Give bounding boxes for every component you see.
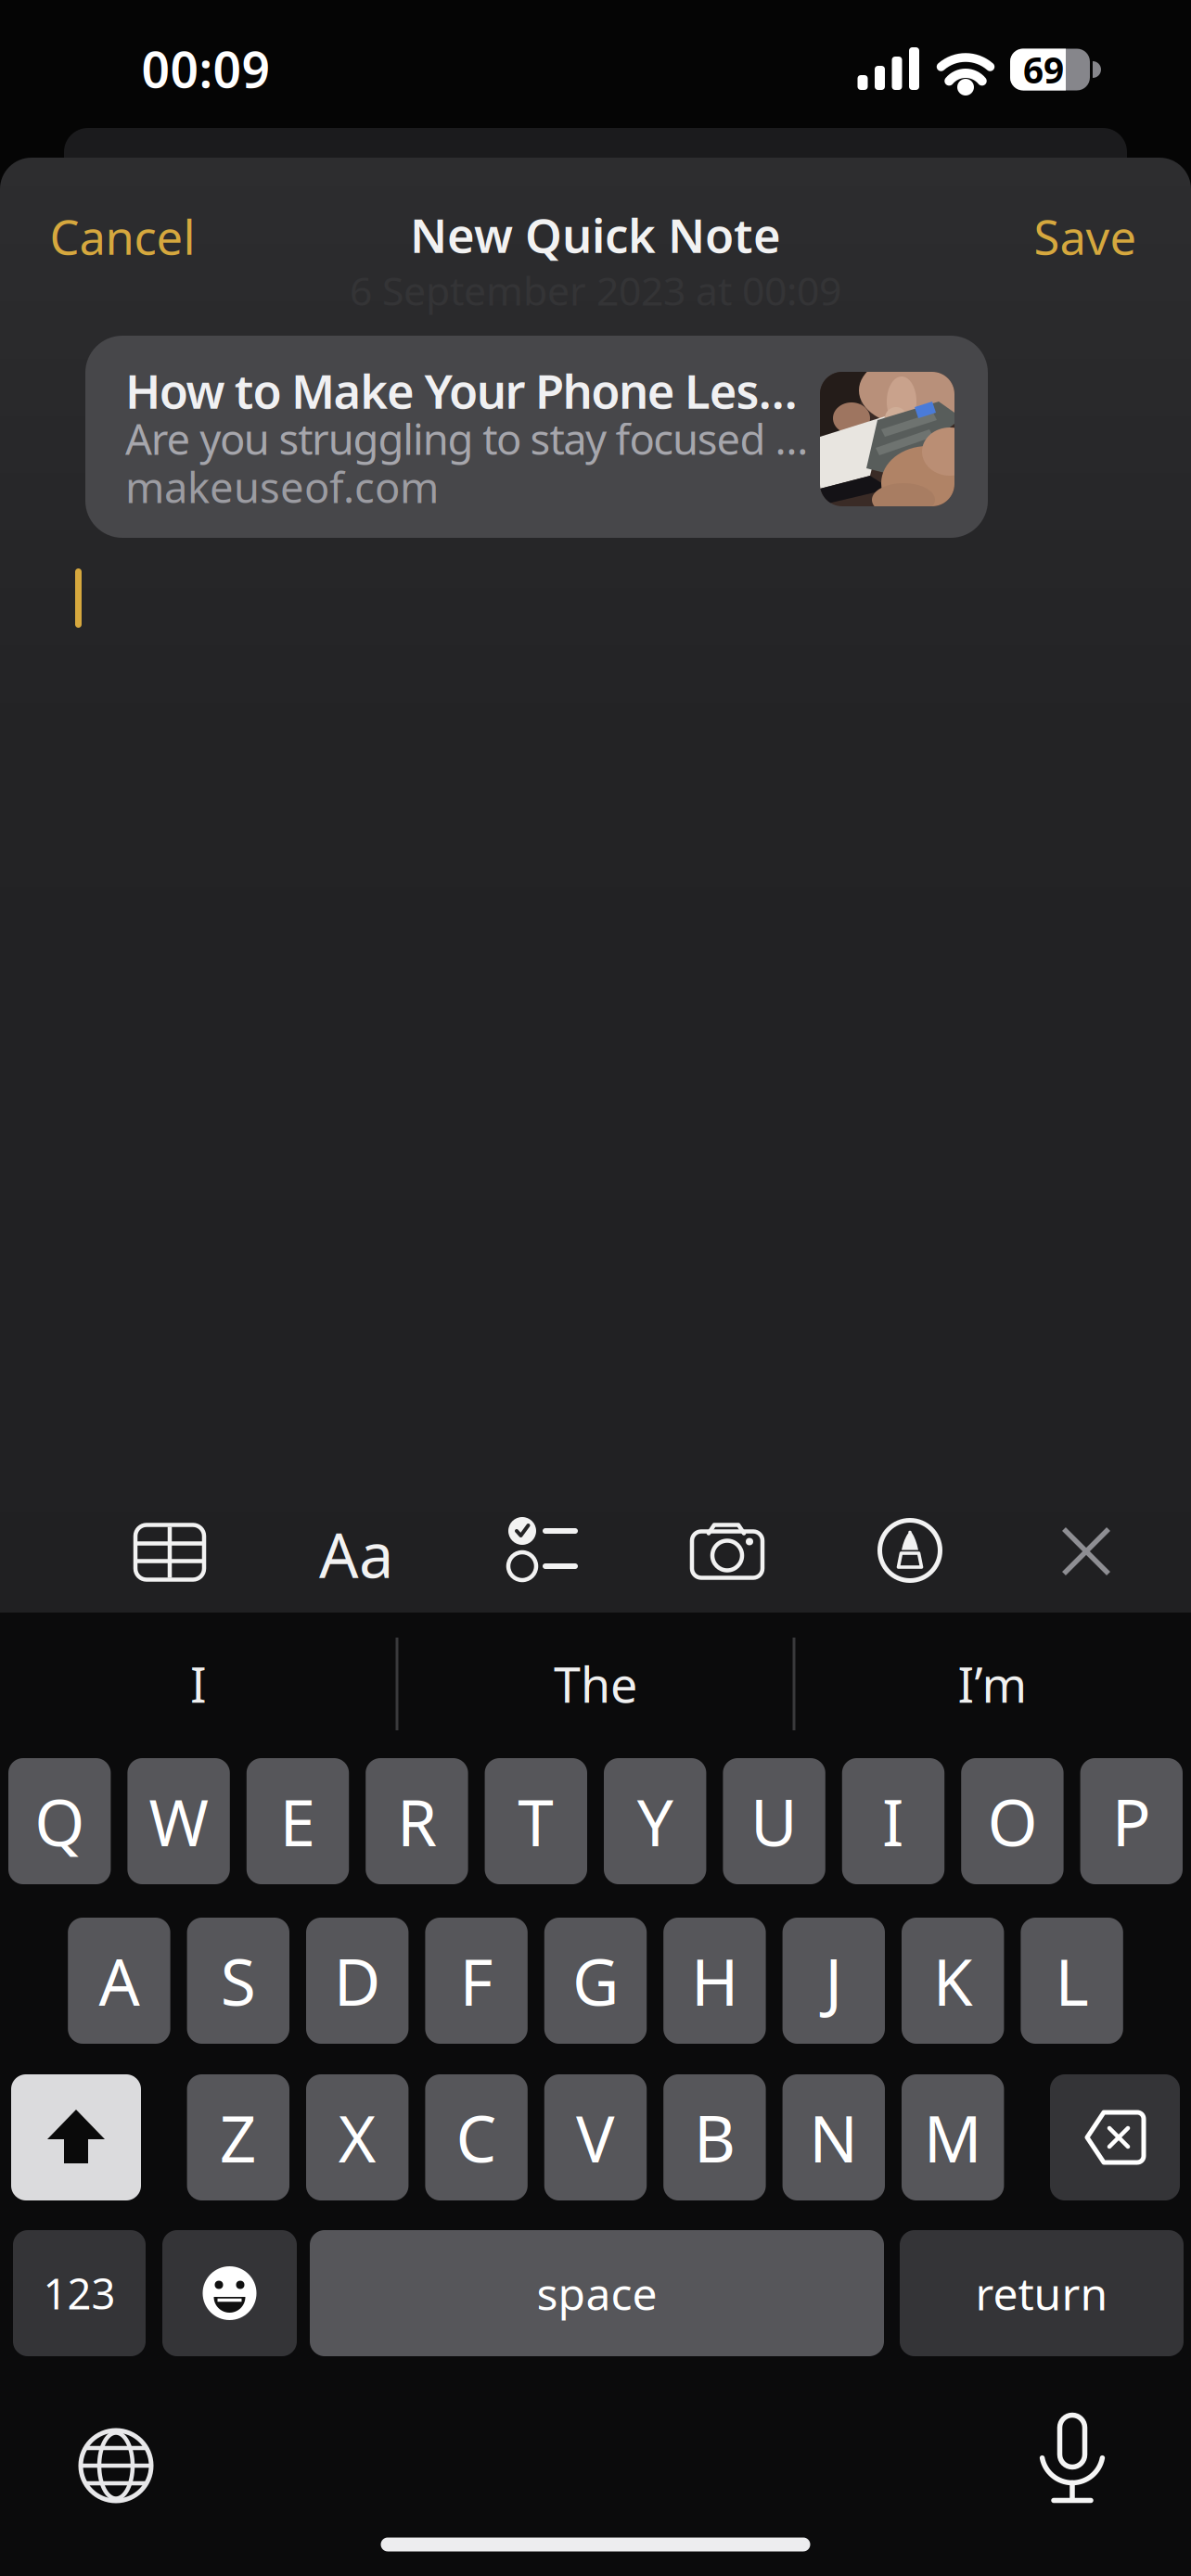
button[interactable]: N	[782, 2074, 885, 2200]
button[interactable]: I’m	[816, 1628, 1169, 1740]
staticText: F	[460, 1938, 493, 2023]
staticText: A	[99, 1938, 140, 2023]
staticText: Aa	[319, 1513, 393, 1595]
button[interactable]: I	[842, 1758, 944, 1884]
staticText: Are you struggling to stay focused on w.…	[125, 411, 817, 467]
button[interactable]: W	[127, 1758, 230, 1884]
staticText: 123	[43, 2265, 115, 2321]
staticText: T	[518, 1779, 554, 1864]
button[interactable]: P	[1080, 1758, 1183, 1884]
staticText: J	[825, 1938, 843, 2023]
staticText: W	[149, 1779, 208, 1864]
staticText: 69	[1023, 46, 1064, 93]
button[interactable]: K	[902, 1918, 1004, 2044]
button[interactable]: return	[900, 2230, 1184, 2356]
staticText: V	[576, 2095, 615, 2180]
button[interactable]: T	[485, 1758, 587, 1884]
button[interactable]	[114, 1506, 225, 1599]
button[interactable]	[1031, 1505, 1142, 1598]
staticText: 00:09	[141, 36, 270, 101]
staticText: C	[456, 2095, 497, 2180]
button[interactable]: X	[306, 2074, 409, 2200]
staticText: New Quick Note	[410, 203, 781, 266]
button[interactable]: M	[902, 2074, 1004, 2200]
staticText: 6 September 2023 at 00:09	[350, 264, 841, 317]
button[interactable]: 123	[13, 2230, 146, 2356]
staticText: return	[975, 2264, 1108, 2323]
button[interactable]: Q	[8, 1758, 111, 1884]
button[interactable]: R	[366, 1758, 468, 1884]
staticText: Cancel	[50, 205, 195, 268]
button[interactable]: Save	[1002, 185, 1169, 287]
button[interactable]: S	[187, 1918, 289, 2044]
button[interactable]	[1007, 2394, 1137, 2524]
button[interactable]: D	[306, 1918, 409, 2044]
button[interactable]	[162, 2230, 297, 2356]
staticText: O	[987, 1779, 1037, 1864]
button[interactable]: B	[663, 2074, 766, 2200]
staticText: Z	[220, 2095, 257, 2180]
button[interactable]	[854, 1504, 966, 1597]
staticText: makeuseof.com	[125, 459, 439, 515]
button[interactable]: L	[1021, 1918, 1123, 2044]
staticText: L	[1055, 1938, 1089, 2023]
button[interactable]: A	[68, 1918, 170, 2044]
staticText: I	[882, 1779, 904, 1864]
staticText: B	[694, 2095, 735, 2180]
button[interactable]: U	[723, 1758, 825, 1884]
staticText: P	[1112, 1779, 1151, 1864]
button[interactable]: Aa	[301, 1508, 412, 1600]
staticText: space	[537, 2264, 657, 2323]
staticText: K	[933, 1938, 973, 2023]
staticText: Q	[35, 1779, 85, 1864]
button[interactable]: F	[425, 1918, 528, 2044]
staticText: X	[338, 2095, 376, 2180]
staticText: M	[924, 2095, 982, 2180]
staticText: Y	[637, 1779, 673, 1864]
staticText: Save	[1034, 205, 1137, 268]
button[interactable]: Z	[187, 2074, 289, 2200]
staticText: S	[221, 1938, 256, 2023]
button[interactable]	[51, 2401, 181, 2531]
staticText: G	[572, 1938, 619, 2023]
button[interactable]: E	[247, 1758, 349, 1884]
staticText: The	[554, 1652, 637, 1716]
staticText: D	[334, 1938, 381, 2023]
button[interactable]: C	[425, 2074, 528, 2200]
staticText: I’m	[958, 1652, 1027, 1716]
button[interactable]: space	[310, 2230, 884, 2356]
button[interactable]: Y	[604, 1758, 706, 1884]
staticText: How to Make Your Phone Less Di...	[125, 359, 817, 422]
button[interactable]	[486, 1506, 597, 1599]
button[interactable]: J	[782, 1918, 885, 2044]
button[interactable]: V	[544, 2074, 647, 2200]
staticText: I	[190, 1652, 207, 1716]
button[interactable]: I	[22, 1628, 375, 1740]
staticText: H	[691, 1938, 738, 2023]
staticText: N	[809, 2095, 858, 2180]
button[interactable]: O	[961, 1758, 1064, 1884]
button[interactable]: Cancel	[20, 185, 224, 287]
staticText: R	[397, 1779, 437, 1864]
button[interactable]: H	[663, 1918, 766, 2044]
button[interactable]	[1050, 2074, 1180, 2200]
button[interactable]	[672, 1505, 783, 1598]
staticText: U	[750, 1779, 798, 1864]
button[interactable]: The	[419, 1628, 772, 1740]
button[interactable]	[11, 2074, 141, 2200]
button[interactable]: G	[544, 1918, 647, 2044]
button[interactable]: How to Make Your Phone Less Di...	[85, 336, 988, 538]
staticText: E	[280, 1779, 316, 1864]
